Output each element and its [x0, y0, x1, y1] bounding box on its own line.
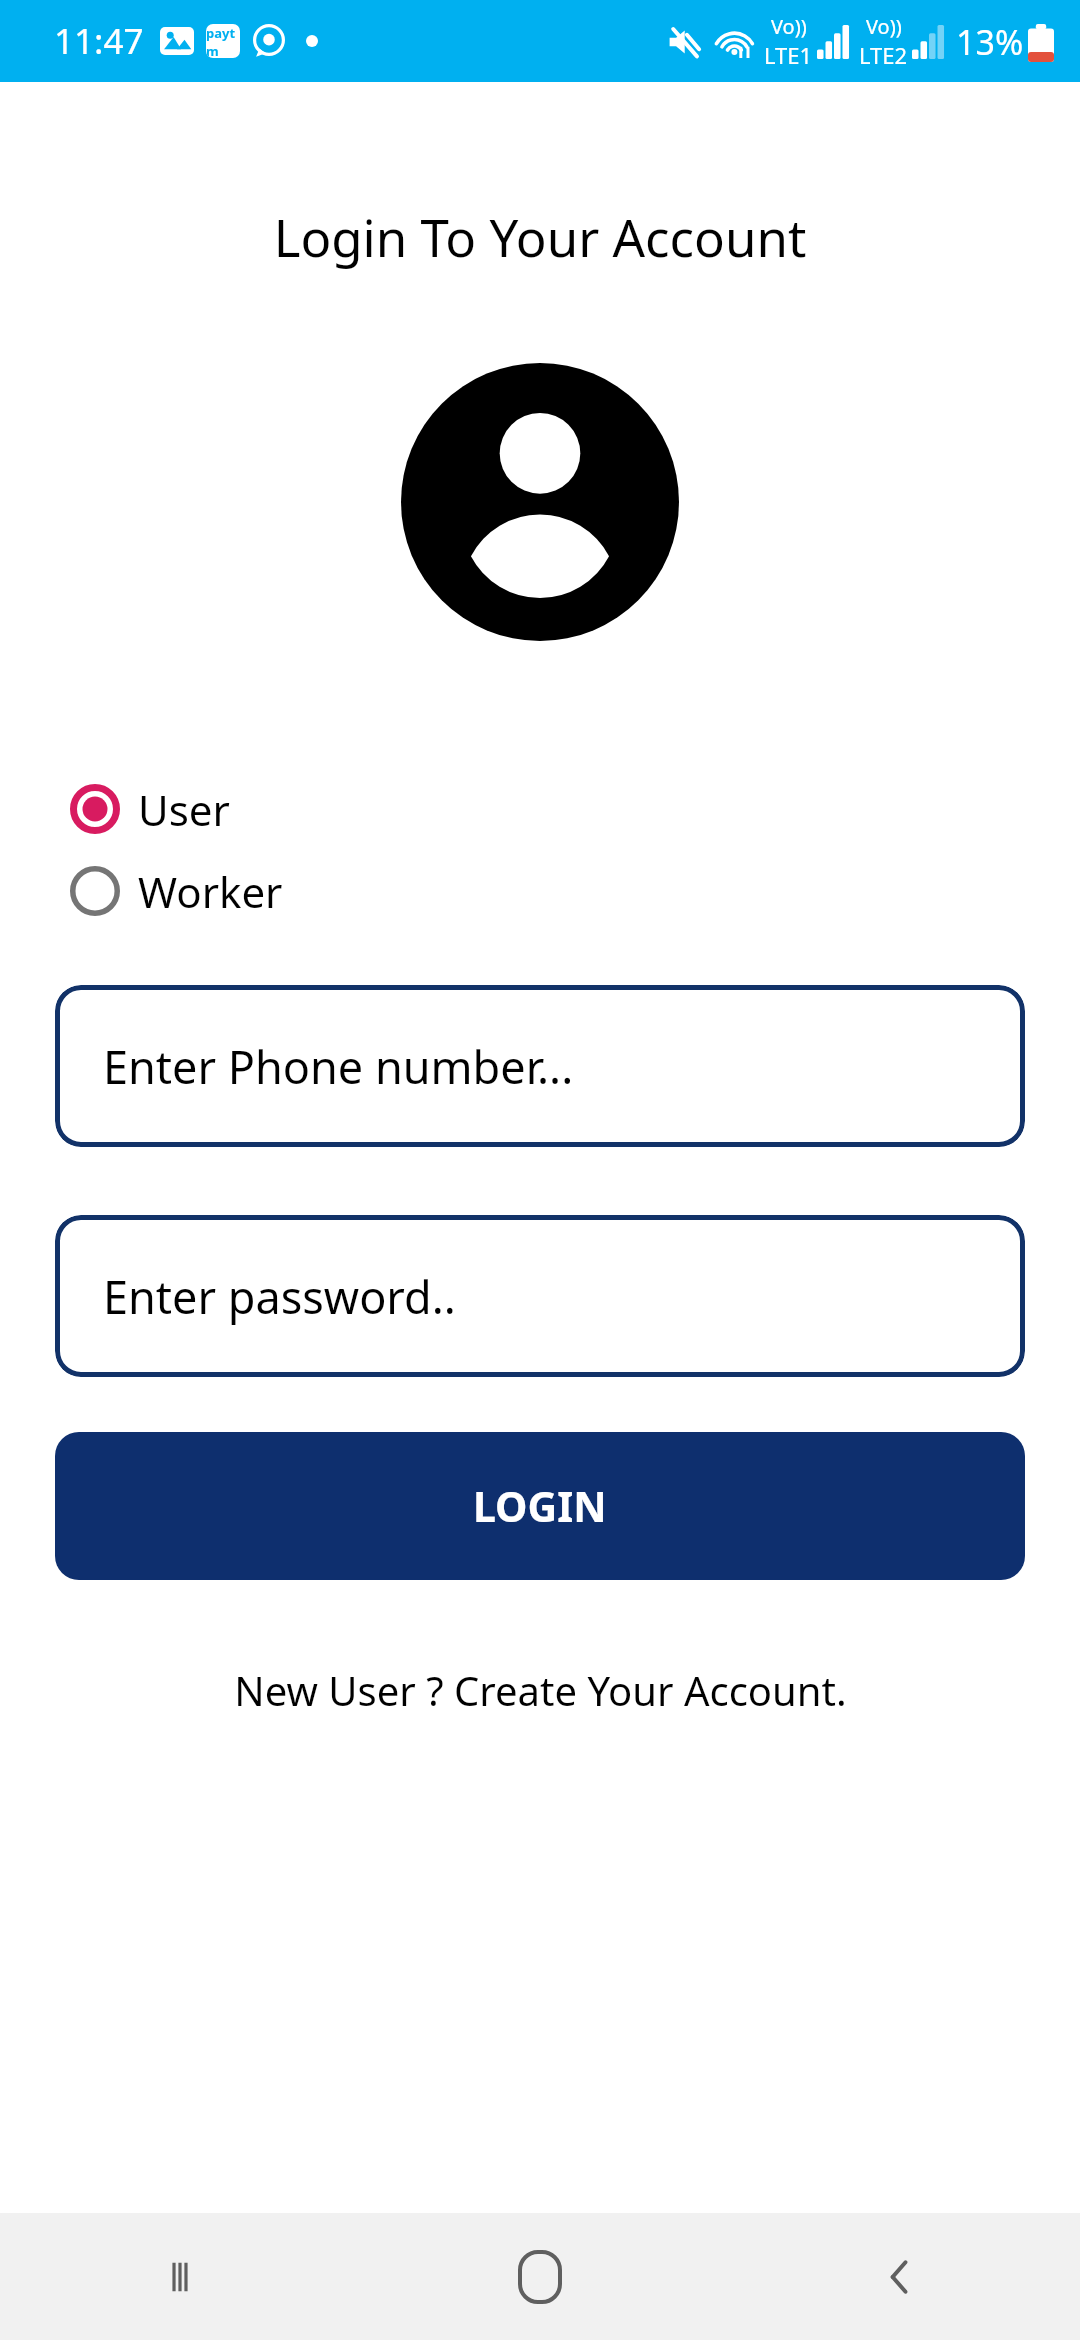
- other: Profile picture: [401, 363, 679, 641]
- button[interactable]: Home: [360, 2213, 720, 2340]
- button[interactable]: Back: [720, 2213, 1080, 2340]
- button[interactable]: Enter Phone number...: [55, 985, 1025, 1147]
- staticText: Enter Phone number...: [103, 1036, 574, 1097]
- staticText: Vo)): [771, 13, 807, 40]
- button[interactable]: Worker: [64, 860, 307, 922]
- staticText: New User ? Create Your Account.: [234, 1663, 847, 1717]
- staticText: 11:47: [54, 17, 144, 65]
- staticText: Login To Your Account: [0, 202, 1080, 271]
- staticText: Vo)): [866, 13, 902, 40]
- staticText: paytm: [206, 24, 240, 58]
- button[interactable]: Recent apps: [0, 2213, 360, 2340]
- staticText: User: [138, 781, 230, 838]
- staticText: Worker: [138, 863, 283, 920]
- staticText: LTE1: [764, 40, 813, 70]
- button[interactable]: User: [64, 778, 254, 840]
- staticText: Enter password..: [103, 1266, 456, 1327]
- button[interactable]: LOGIN: [55, 1432, 1025, 1580]
- staticText: LOGIN: [473, 1478, 607, 1534]
- button[interactable]: New User ? Create Your Account.: [226, 1657, 855, 1723]
- staticText: LTE2: [859, 40, 908, 70]
- staticText: 13%: [956, 19, 1024, 65]
- button[interactable]: Enter password..: [55, 1215, 1025, 1377]
